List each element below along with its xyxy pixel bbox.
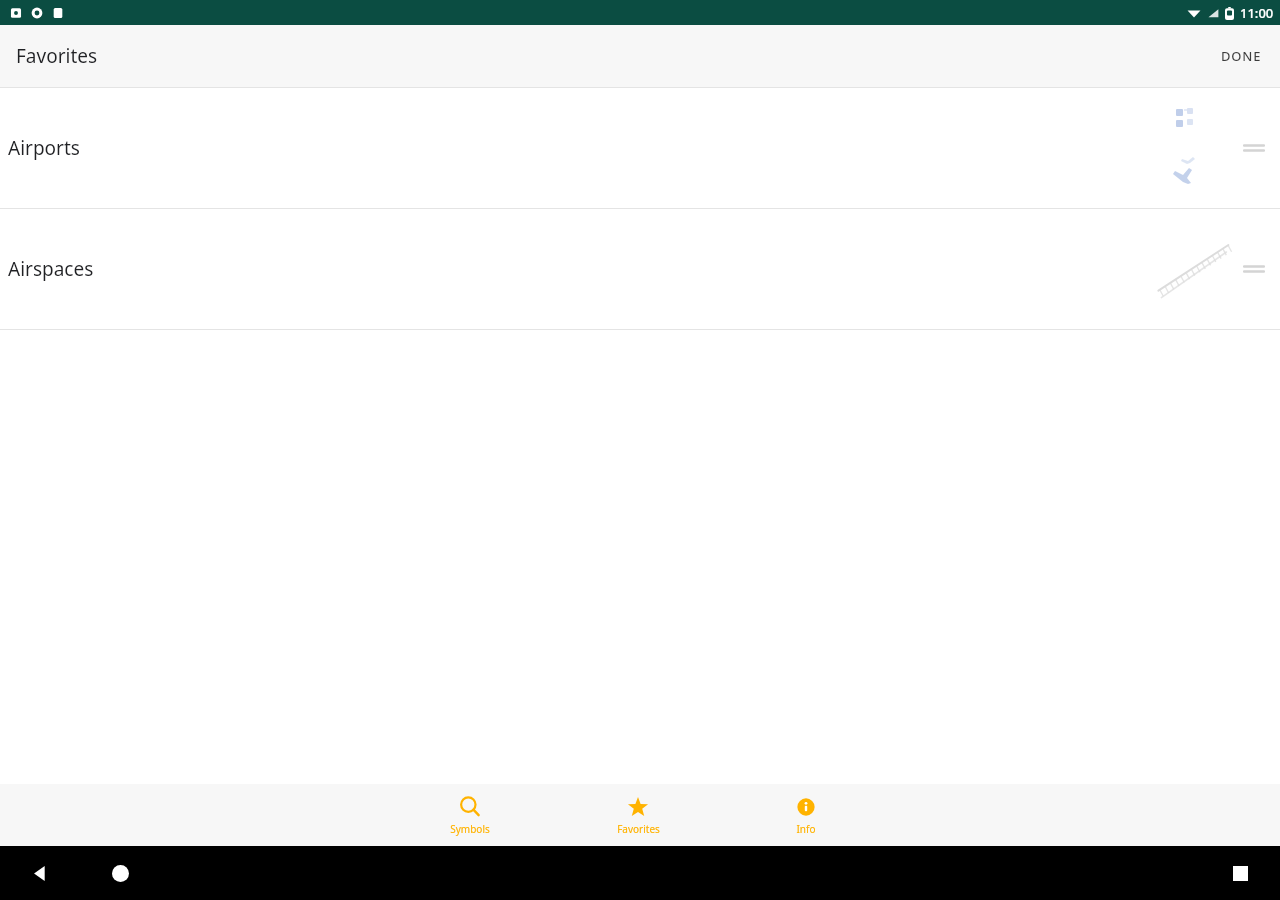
staticText: Info: [796, 822, 816, 836]
button[interactable]: Symbols: [386, 784, 554, 846]
staticText: 11:00: [1240, 4, 1274, 22]
button[interactable]: Favorites: [554, 784, 722, 846]
button[interactable]: Recent apps: [1220, 853, 1260, 893]
button[interactable]: Airports: [0, 88, 1280, 208]
staticText: Favorites: [617, 822, 660, 836]
staticText: Favorites: [16, 43, 98, 69]
staticText: Airspaces: [8, 256, 94, 282]
staticText: Symbols: [450, 822, 490, 836]
button[interactable]: Airspaces: [0, 209, 1280, 329]
button[interactable]: Info: [722, 784, 890, 846]
staticText: DONE: [1221, 47, 1262, 65]
staticText: Airports: [8, 135, 80, 161]
button[interactable]: Reorder Airspaces: [1236, 251, 1272, 287]
button[interactable]: Reorder Airports: [1236, 130, 1272, 166]
button[interactable]: DONE: [1203, 31, 1280, 81]
button[interactable]: Back: [20, 853, 60, 893]
button[interactable]: Home: [100, 853, 140, 893]
